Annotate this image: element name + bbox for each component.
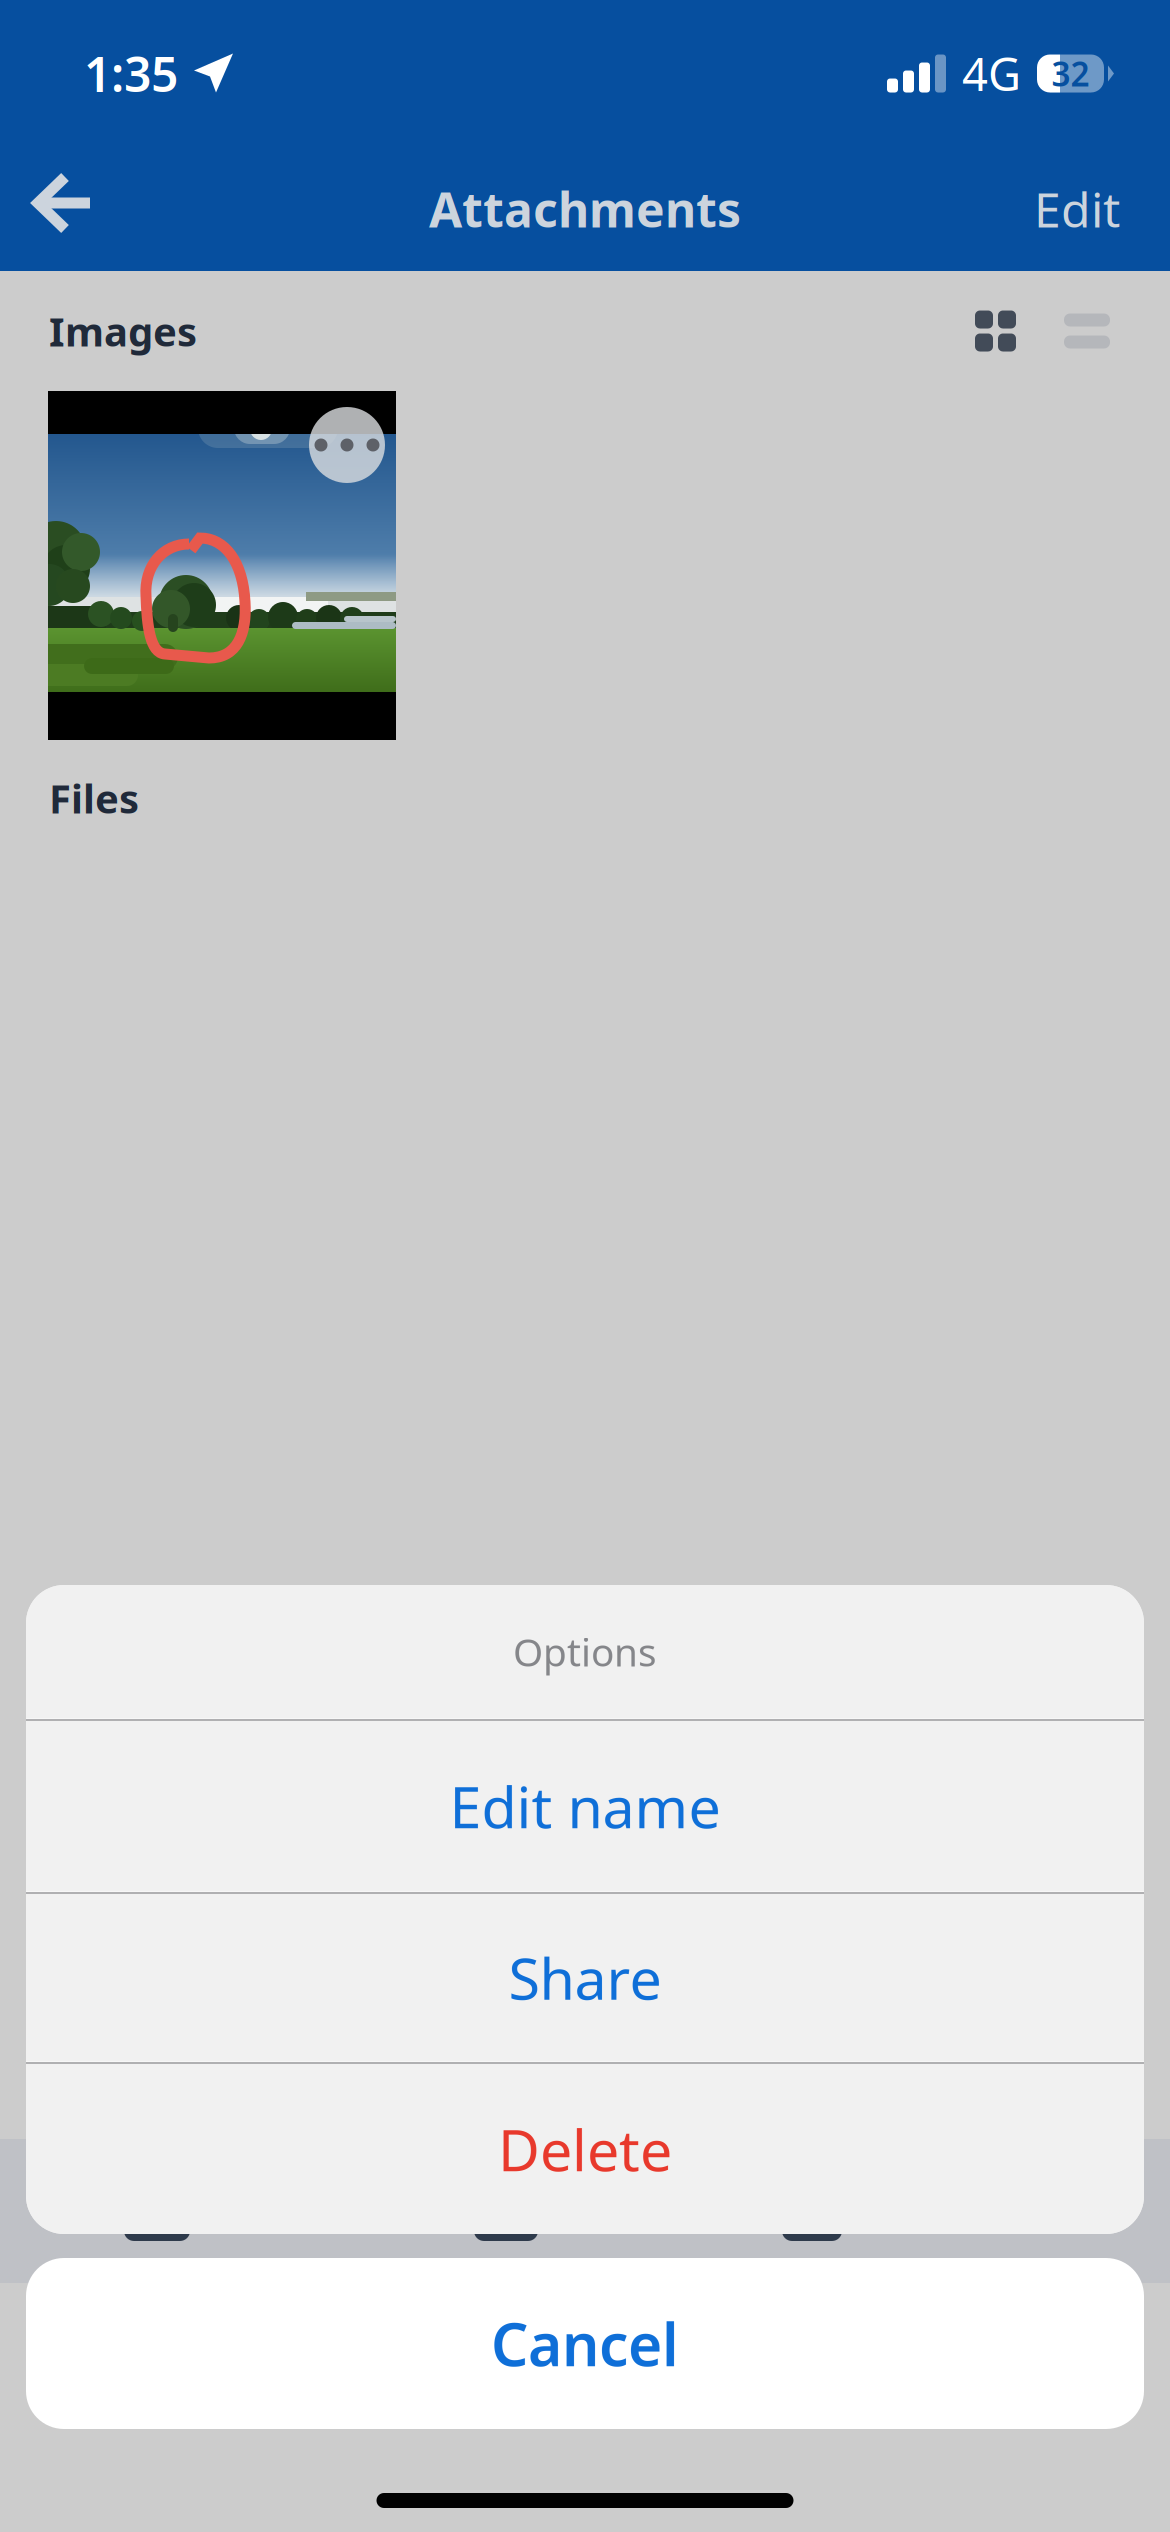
button[interactable]: Delete xyxy=(26,2064,1144,2234)
button[interactable]: Back xyxy=(0,151,122,267)
staticText: Files xyxy=(49,771,139,824)
staticText: 32 xyxy=(1051,51,1089,96)
staticText: 1:35 xyxy=(84,42,178,105)
staticText: 4G xyxy=(962,43,1021,104)
button[interactable]: Grid view xyxy=(965,300,1026,361)
button[interactable]: Edit name xyxy=(26,1721,1144,1891)
staticText: Share xyxy=(508,1939,661,2015)
button[interactable]: Cancel xyxy=(26,2258,1144,2429)
staticText: Cancel xyxy=(491,2304,679,2382)
button[interactable]: Edit xyxy=(1004,149,1170,269)
staticText: Options xyxy=(513,1626,657,1677)
staticText: Edit xyxy=(1034,177,1120,241)
staticText: Edit name xyxy=(449,1768,720,1844)
button[interactable]: List view xyxy=(1054,300,1120,361)
staticText: Images xyxy=(49,304,197,357)
button[interactable]: Share xyxy=(26,1894,1144,2061)
staticText: Attachments xyxy=(429,177,741,241)
button[interactable]: More options xyxy=(296,391,396,491)
staticText: Delete xyxy=(498,2111,672,2187)
